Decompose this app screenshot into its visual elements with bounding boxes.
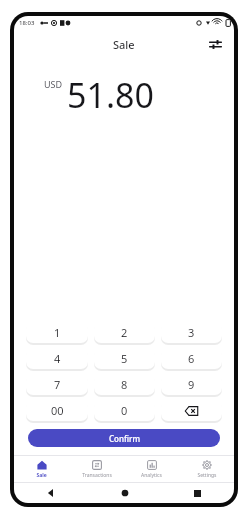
staticText: 3 [188,325,195,340]
button[interactable]: 8 [94,374,155,395]
staticText: 4 [54,351,61,366]
staticText: Confirm [109,433,140,444]
button[interactable]: Analytics [124,456,179,482]
staticText: 8 [121,377,128,392]
staticText: 7 [54,377,61,392]
button[interactable]: 9 [161,374,222,395]
button[interactable]: Settings [179,456,234,482]
button[interactable]: Confirm [28,429,220,447]
staticText: Sale [113,37,135,52]
button[interactable]: 6 [161,348,222,369]
staticText: USD [44,78,63,90]
staticText: 5 [121,351,128,366]
button[interactable]: 4 [26,348,88,369]
button[interactable]: 00 [26,400,88,421]
button[interactable]: 1 [26,322,88,343]
button[interactable]: Filter options [204,33,226,55]
staticText: 1 [54,325,61,340]
button[interactable]: 7 [26,374,88,395]
staticText: 0 [121,403,128,418]
button[interactable]: 3 [161,322,222,343]
button[interactable]: Transactions [69,456,124,482]
button[interactable]: 0 [94,400,155,421]
button[interactable]: 2 [94,322,155,343]
button[interactable]: 5 [94,348,155,369]
staticText: Settings [197,472,217,479]
button[interactable]: Sale [14,456,69,482]
staticText: 51.80 [67,72,154,118]
staticText: 2 [121,325,128,340]
button[interactable]: Home [88,483,161,503]
button[interactable]: Recent apps [161,483,234,503]
staticText: Sale [36,472,47,479]
staticText: Transactions [82,472,112,479]
staticText: 00 [51,403,64,418]
button[interactable]: Back [14,483,88,503]
button[interactable]: Backspace [161,400,222,421]
staticText: Analytics [141,472,162,479]
staticText: 18:03 [19,19,35,27]
staticText: 9 [188,377,195,392]
staticText: 6 [188,351,195,366]
